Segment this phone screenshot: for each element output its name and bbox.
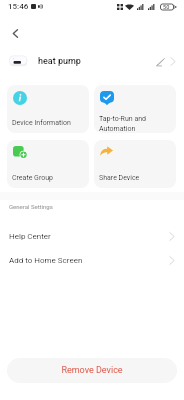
staticText: Share Device [99,174,140,182]
button[interactable]: Rename device [154,55,167,68]
staticText: Create Group [12,174,53,182]
button[interactable]: Share Device [94,140,176,188]
button[interactable]: Add to Home Screen [0,247,184,273]
button[interactable]: Tap-to-Run and Automation [94,85,176,133]
button[interactable]: Remove Device [7,358,177,383]
staticText: Device Information [12,119,71,127]
staticText: 15:46 [8,2,29,11]
staticText: heat pump [38,56,81,67]
button[interactable]: Back [3,21,27,45]
button[interactable]: Create Group [7,140,89,188]
staticText: General Settings [9,203,53,210]
staticText: Add to Home Screen [9,256,83,265]
button[interactable]: heat pump [0,48,184,74]
staticText: Tap-to-Run and Automation [99,115,147,132]
staticText: 50 [163,4,170,10]
staticText: Remove Device [61,365,123,376]
staticText: Help Center [9,232,51,241]
button[interactable]: Help Center [0,223,184,249]
button[interactable]: Device Information [7,85,89,133]
